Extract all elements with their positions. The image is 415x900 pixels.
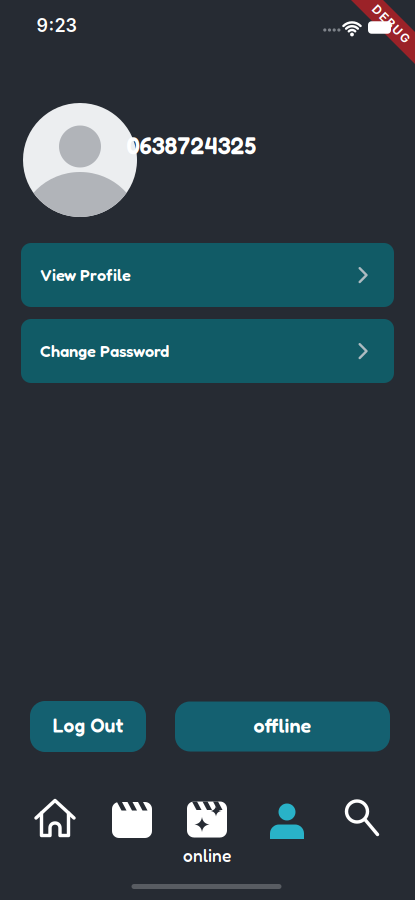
button[interactable]: Online (175, 793, 239, 871)
staticText: DEBUG (367, 17, 415, 31)
button[interactable]: Search (336, 796, 384, 840)
staticText: 9:23 (36, 15, 76, 36)
staticText: Log Out (52, 714, 123, 737)
staticText: online (183, 845, 231, 866)
button[interactable]: Log Out (30, 701, 146, 752)
button[interactable]: offline (175, 701, 390, 751)
button[interactable]: View Profile (21, 243, 394, 307)
button[interactable]: Profile (263, 797, 311, 841)
button[interactable]: Change Password (21, 319, 394, 383)
staticText: View Profile (40, 265, 131, 285)
button[interactable]: Movies (108, 798, 156, 842)
button[interactable]: Home (23, 791, 87, 847)
staticText: 0638724325 (126, 131, 256, 160)
staticText: Change Password (40, 341, 169, 361)
staticText: offline (253, 714, 311, 737)
